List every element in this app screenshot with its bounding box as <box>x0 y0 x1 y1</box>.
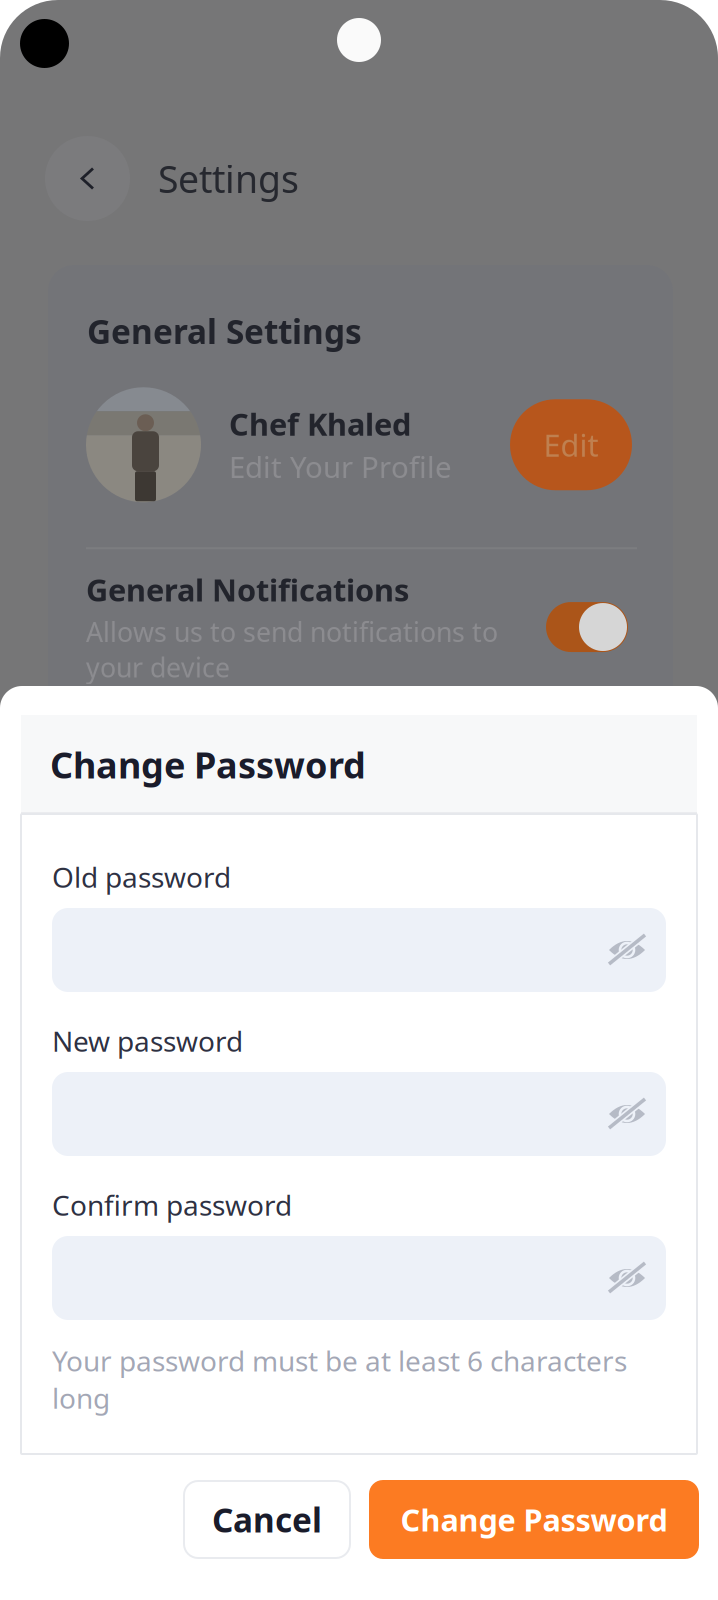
staticText: Edit Your Profile <box>229 447 452 486</box>
staticText: Change Password <box>50 741 366 788</box>
staticText: Settings <box>158 154 299 203</box>
button[interactable]: Show New password <box>52 1072 666 1156</box>
staticText: New password <box>52 1022 243 1060</box>
staticText: General Notifications <box>86 569 409 610</box>
staticText: Cancel <box>212 1497 322 1542</box>
button[interactable]: Back <box>45 136 130 221</box>
button[interactable]: Cancel <box>184 1481 350 1558</box>
staticText: Old password <box>52 858 231 896</box>
button[interactable]: Show Confirm password <box>52 1236 666 1320</box>
staticText: Change Password <box>400 1499 667 1540</box>
button[interactable]: Change Password <box>369 1480 699 1559</box>
button[interactable]: Edit <box>510 399 632 490</box>
staticText: Edit <box>543 424 598 465</box>
staticText: Confirm password <box>52 1186 292 1224</box>
staticText: Your password must be at least 6 charact… <box>52 1342 627 1416</box>
staticText: Allows us to send notifications to your … <box>86 614 498 685</box>
staticText: General Settings <box>87 309 362 353</box>
staticText: Chef Khaled <box>229 403 411 444</box>
button[interactable]: Show Old password <box>52 908 666 992</box>
